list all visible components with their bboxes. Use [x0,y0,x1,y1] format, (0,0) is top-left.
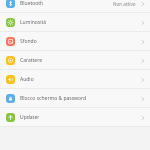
staticText: Sfondo [20,38,37,45]
staticText: Carattere [20,57,42,64]
staticText: Updater [20,114,40,121]
button[interactable]: Carattere [0,51,150,70]
staticText: Blocco schermo & password [20,95,87,102]
staticText: Bluetooth [20,0,44,7]
staticText: Audio [20,76,34,83]
button[interactable]: Updater [0,108,150,127]
button[interactable]: Blocco schermo & password [0,89,150,108]
button[interactable]: Bluetooth [0,0,150,13]
staticText: Non attivo [113,1,136,7]
button[interactable]: Luminosità [0,13,150,32]
button[interactable]: Audio [0,70,150,89]
staticText: Luminosità [20,19,47,26]
button[interactable]: Sfondo [0,32,150,51]
